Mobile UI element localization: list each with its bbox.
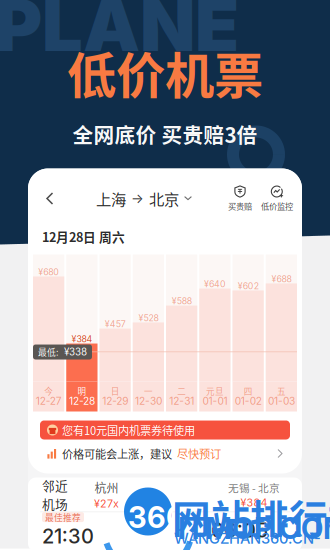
staticText: 四 xyxy=(244,385,253,397)
staticText: 最低: xyxy=(38,346,58,358)
staticText: 价格可能会上涨，建议 xyxy=(62,445,172,462)
staticText: 360 xyxy=(128,499,185,535)
button[interactable]: 您有10元国内机票券待使用 xyxy=(40,420,290,439)
button[interactable]: 价格可能会上涨，建议 xyxy=(40,442,290,464)
staticText: ¥384 xyxy=(240,496,267,509)
staticText: 01-03 xyxy=(268,395,295,407)
staticText: 您有10元国内机票券待使用 xyxy=(62,422,195,438)
staticText: ¥338 xyxy=(64,346,87,358)
staticText: 今 xyxy=(44,385,53,397)
staticText: 12月28日 周六 xyxy=(42,227,125,246)
button[interactable]: 邻近 xyxy=(28,477,302,511)
staticText: 杭州 xyxy=(94,479,118,496)
staticText: 01-01 xyxy=(202,395,227,407)
staticText: ¥528 xyxy=(138,313,158,323)
staticText: ¥27x xyxy=(94,497,119,510)
staticText: 网站排行榜 xyxy=(172,488,330,544)
button[interactable]: 上海 xyxy=(96,178,192,218)
staticText: 北京 xyxy=(149,187,179,210)
staticText: 12-27 xyxy=(36,395,62,407)
staticText: 买贵赔 xyxy=(228,200,252,212)
staticText: → xyxy=(131,190,144,206)
staticText: 12-29 xyxy=(102,395,128,407)
staticText: ¥680 xyxy=(38,267,59,277)
staticText: 06:05 xyxy=(211,518,268,542)
staticText: 12-28 xyxy=(69,395,95,407)
staticText: 尽快预订 xyxy=(177,445,221,462)
staticText: 12-30 xyxy=(135,395,162,407)
staticText: ITMOP.COM xyxy=(178,510,330,546)
staticText: 01-02 xyxy=(235,395,262,407)
staticText: 无锡 - 北京 xyxy=(228,480,280,495)
staticText: 21:30 xyxy=(42,524,94,548)
button[interactable]: 买贵赔 xyxy=(224,178,256,218)
staticText: 明 xyxy=(77,385,86,397)
staticText: 五 xyxy=(277,385,286,397)
staticText: 机场 xyxy=(42,494,68,513)
staticText: ¥602 xyxy=(238,281,259,291)
staticText: 全网底价 买贵赔3倍 xyxy=(72,119,257,149)
staticText: 一 xyxy=(144,385,153,397)
staticText: 低价监控 xyxy=(261,200,293,212)
button[interactable]: Back xyxy=(36,178,64,218)
staticText: 元旦 xyxy=(206,385,224,397)
staticText: 最佳推荐 xyxy=(45,511,81,523)
staticText: PLANE xyxy=(0,0,239,69)
staticText: 低价机票 xyxy=(67,36,263,108)
staticText: 12-31 xyxy=(169,395,194,407)
staticText: 二 xyxy=(177,385,186,397)
staticText: ¥457 xyxy=(105,319,126,329)
staticText: ¥384 xyxy=(71,334,92,344)
staticText: ¥640 xyxy=(204,279,226,289)
button[interactable]: 低价监控 xyxy=(260,178,294,218)
staticText: WANGZHAN360.CN- xyxy=(174,529,321,547)
staticText: ¥588 xyxy=(172,296,192,306)
staticText: 上海 xyxy=(96,187,126,210)
staticText: 日 xyxy=(111,385,120,397)
staticText: 邻近 xyxy=(42,476,68,494)
staticText: ¥688 xyxy=(271,274,291,284)
